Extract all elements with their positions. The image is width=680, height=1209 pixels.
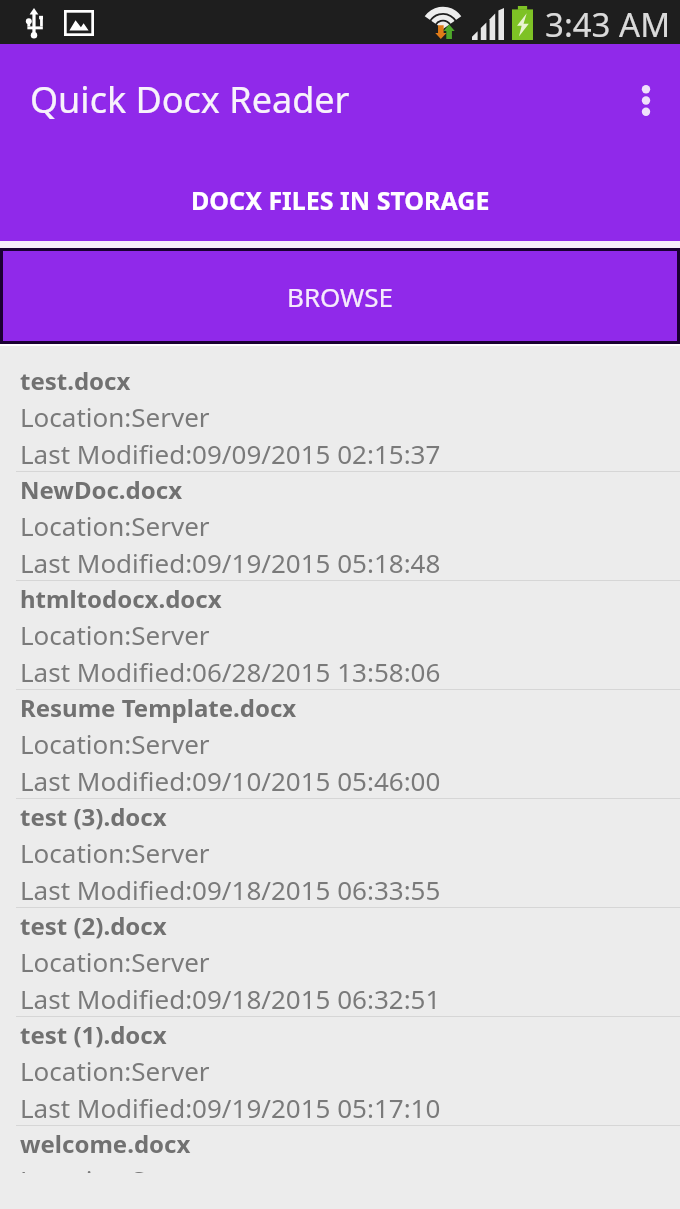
staticText: test.docx bbox=[20, 364, 131, 397]
staticText: Last Modified:09/09/2015 02:15:37 bbox=[20, 436, 441, 471]
staticText: test (2).docx bbox=[20, 909, 167, 942]
staticText: Location:Server bbox=[20, 508, 210, 543]
staticText: test (1).docx bbox=[20, 1018, 167, 1051]
button[interactable]: NewDoc.docx bbox=[0, 472, 680, 581]
staticText: Resume Template.docx bbox=[20, 691, 297, 724]
button[interactable]: test (2).docx bbox=[0, 908, 680, 1017]
staticText: Last Modified:09/19/2015 05:18:48 bbox=[20, 545, 441, 580]
staticText: Location:Server bbox=[20, 726, 210, 761]
button[interactable]: test.docx bbox=[0, 363, 680, 472]
button[interactable]: test (3).docx bbox=[0, 799, 680, 908]
staticText: Last Modified:09/19/2015 05:17:10 bbox=[20, 1090, 441, 1125]
staticText: htmltodocx.docx bbox=[20, 582, 222, 615]
staticText: Last Modified:06/28/2015 13:58:06 bbox=[20, 654, 441, 689]
staticText: Location:Server bbox=[20, 1162, 210, 1197]
button[interactable]: BROWSE bbox=[3, 251, 677, 341]
staticText: DOCX FILES IN STORAGE bbox=[191, 183, 490, 217]
button[interactable]: Resume Template.docx bbox=[0, 690, 680, 799]
staticText: 3:43 AM bbox=[545, 2, 671, 46]
staticText: Location:Server bbox=[20, 944, 210, 979]
button[interactable]: More options bbox=[618, 72, 674, 128]
button[interactable]: htmltodocx.docx bbox=[0, 581, 680, 690]
staticText: Last Modified:09/18/2015 06:33:55 bbox=[20, 872, 441, 907]
staticText: Location:Server bbox=[20, 399, 210, 434]
staticText: Quick Docx Reader bbox=[30, 75, 350, 124]
staticText: welcome.docx bbox=[20, 1127, 191, 1160]
staticText: BROWSE bbox=[287, 279, 394, 314]
staticText: Location:Server bbox=[20, 617, 210, 652]
staticText: Last Modified:09/18/2015 06:32:51 bbox=[20, 981, 441, 1016]
button[interactable]: welcome.docx bbox=[0, 1126, 680, 1209]
staticText: test (3).docx bbox=[20, 800, 167, 833]
staticText: Location:Server bbox=[20, 835, 210, 870]
staticText: NewDoc.docx bbox=[20, 473, 183, 506]
button[interactable]: test (1).docx bbox=[0, 1017, 680, 1126]
staticText: Last Modified:09/10/2015 05:46:00 bbox=[20, 763, 441, 798]
staticText: Location:Server bbox=[20, 1053, 210, 1088]
